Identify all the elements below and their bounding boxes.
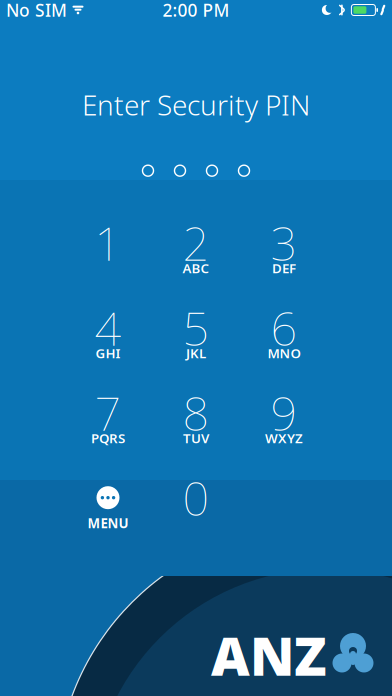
button[interactable]: 2 bbox=[152, 220, 240, 278]
staticText: 9 bbox=[270, 382, 297, 444]
staticText: GHI bbox=[95, 344, 120, 362]
staticText: 2 bbox=[182, 212, 209, 274]
staticText: DEF bbox=[272, 259, 296, 277]
button[interactable]: 1 bbox=[64, 220, 152, 278]
button[interactable]: 9 bbox=[240, 390, 328, 448]
staticText: PQRS bbox=[91, 429, 125, 447]
button[interactable]: 7 bbox=[64, 390, 152, 448]
staticText: 1 bbox=[94, 212, 121, 274]
staticText: MENU bbox=[87, 514, 128, 532]
button[interactable]: 6 bbox=[240, 305, 328, 363]
staticText: WXYZ bbox=[265, 429, 303, 447]
staticText: JKL bbox=[186, 344, 206, 362]
staticText: Enter Security PIN bbox=[82, 86, 310, 123]
staticText: 8 bbox=[182, 382, 209, 444]
staticText: No SIM bbox=[6, 0, 67, 21]
staticText: 4 bbox=[94, 297, 121, 359]
staticText: ANZ bbox=[211, 620, 327, 690]
staticText: 3 bbox=[270, 212, 297, 274]
button[interactable]: 3 bbox=[240, 220, 328, 278]
button[interactable]: 4 bbox=[64, 305, 152, 363]
button[interactable]: 0 bbox=[152, 475, 240, 533]
staticText: ABC bbox=[182, 259, 209, 277]
button[interactable]: Menu bbox=[64, 475, 152, 533]
staticText: MNO bbox=[267, 344, 300, 362]
staticText: 5 bbox=[182, 297, 209, 359]
staticText: 0 bbox=[182, 467, 209, 529]
staticText: TUV bbox=[183, 429, 209, 447]
staticText: 2:00 PM bbox=[162, 0, 229, 21]
staticText: 6 bbox=[270, 297, 297, 359]
button[interactable]: 8 bbox=[152, 390, 240, 448]
button[interactable]: 5 bbox=[152, 305, 240, 363]
staticText: 7 bbox=[94, 382, 121, 444]
